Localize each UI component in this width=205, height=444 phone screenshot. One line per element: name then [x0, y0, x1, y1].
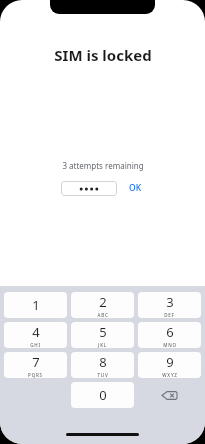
staticText: 9 — [166, 353, 174, 371]
staticText: DEF — [164, 312, 175, 318]
staticText: 6 — [166, 323, 174, 341]
button[interactable]: 5 — [71, 322, 134, 348]
button[interactable] — [61, 181, 117, 196]
button[interactable]: 3 — [138, 292, 201, 318]
staticText: JKL — [98, 342, 107, 348]
staticText: GHI — [30, 342, 41, 348]
staticText: 1 — [32, 296, 40, 314]
button[interactable]: 8 — [71, 352, 134, 378]
staticText: TUV — [97, 372, 109, 378]
staticText: WXYZ — [162, 372, 178, 378]
staticText: 7 — [32, 353, 40, 371]
button[interactable]: Backspace — [138, 382, 201, 408]
staticText: 4 — [32, 323, 40, 341]
staticText: 3 attempts remaining — [62, 160, 144, 171]
button[interactable]: 0 — [71, 382, 134, 408]
staticText: ABC — [97, 312, 109, 318]
staticText: 2 — [99, 293, 107, 311]
staticText: PQRS — [28, 372, 43, 378]
button[interactable]: 1 — [4, 292, 67, 318]
button[interactable]: OK — [127, 180, 144, 196]
staticText: MNO — [163, 342, 177, 348]
button[interactable]: 4 — [4, 322, 67, 348]
staticText: 8 — [99, 353, 107, 371]
staticText: 0 — [99, 386, 107, 404]
button[interactable]: 7 — [4, 352, 67, 378]
staticText: 5 — [99, 323, 107, 341]
button[interactable]: 6 — [138, 322, 201, 348]
staticText: OK — [129, 182, 142, 194]
staticText: 3 — [166, 293, 174, 311]
staticText: SIM is locked — [54, 45, 152, 65]
button[interactable]: 9 — [138, 352, 201, 378]
button[interactable]: 2 — [71, 292, 134, 318]
